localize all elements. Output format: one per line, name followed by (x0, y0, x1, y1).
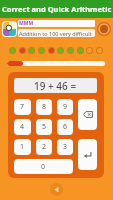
button[interactable]: 4 (14, 119, 31, 135)
staticText: Correct and Quick Arithmetic (2, 4, 112, 14)
staticText: 4 (20, 122, 25, 132)
button[interactable]: 3 (57, 139, 73, 155)
staticText: 9 (63, 102, 68, 112)
staticText: 1 (20, 142, 25, 152)
button[interactable]: 0 (14, 159, 73, 174)
staticText: 6 (63, 122, 68, 132)
button[interactable]: 8 (36, 99, 52, 115)
button[interactable]: Enter (78, 139, 97, 170)
button[interactable]: Back (50, 183, 63, 196)
button[interactable]: 5 (36, 119, 52, 135)
staticText: 19 + 46 = (34, 79, 77, 93)
staticText: 2 (42, 142, 47, 152)
button[interactable]: 7 (14, 99, 31, 115)
button[interactable]: 2 (36, 139, 52, 155)
staticText: 7 (20, 102, 25, 112)
staticText: 0 (41, 162, 46, 172)
button[interactable]: Backspace (78, 99, 97, 130)
staticText: Addition to 100 very difficult (19, 30, 92, 37)
button[interactable]: 6 (57, 119, 73, 135)
staticText: 8 (42, 102, 47, 112)
staticText: 5 (42, 122, 47, 132)
button[interactable]: 1 (14, 139, 31, 155)
staticText: 3 (63, 142, 68, 152)
staticText: MMM (19, 20, 34, 27)
button[interactable]: 9 (57, 99, 73, 115)
